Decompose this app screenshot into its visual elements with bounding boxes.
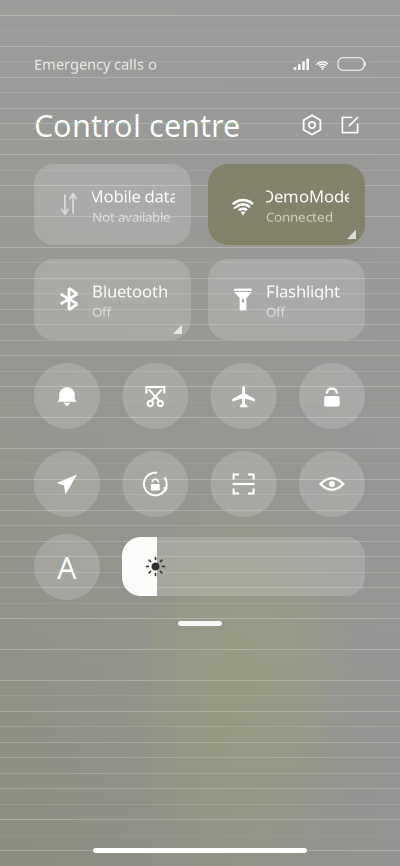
staticText: Off [92,302,111,321]
button[interactable]: Brightness [122,537,365,596]
button[interactable]: Aeroplane mode [211,363,277,429]
button[interactable]: Screenshot [122,363,188,429]
button[interactable]: Location [34,451,100,517]
staticText: Flashlight [266,280,340,302]
button[interactable]: Bluetooth [34,259,191,340]
staticText: Not available [92,207,171,226]
button[interactable]: Edit [334,109,366,141]
staticText: Control centre [34,104,240,146]
button[interactable]: Scan code [211,451,277,517]
button[interactable]: Flashlight [208,259,365,340]
button[interactable]: Settings [296,109,328,141]
button[interactable]: Auto brightness [34,534,100,600]
staticText: DemoMode [262,185,353,207]
button[interactable]: Reading mode [299,451,365,517]
staticText: Emergency calls o [34,54,157,74]
button[interactable]: Ring mode [34,363,100,429]
staticText: Bluetooth [92,280,168,302]
staticText: Off [266,302,285,321]
button[interactable]: Mobile data [34,164,191,245]
staticText: Connected [266,207,333,226]
staticText: A [57,546,77,588]
button[interactable]: DemoMode [208,164,365,245]
button[interactable]: Auto-rotate [122,451,188,517]
button[interactable]: Lock screen [299,363,365,429]
staticText: Mobile data [88,185,178,207]
